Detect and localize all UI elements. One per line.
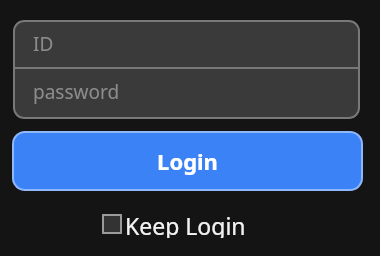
button[interactable]: password [13,69,360,115]
button[interactable]: Login [14,133,361,189]
other: Keep Login checkbox [102,214,122,234]
staticText: Keep Login [125,210,246,238]
staticText: Login [157,146,218,176]
staticText: password [33,79,120,105]
button[interactable]: ID [13,20,360,67]
staticText: ID [33,31,54,57]
button[interactable]: Keep Login checkbox [102,210,246,238]
